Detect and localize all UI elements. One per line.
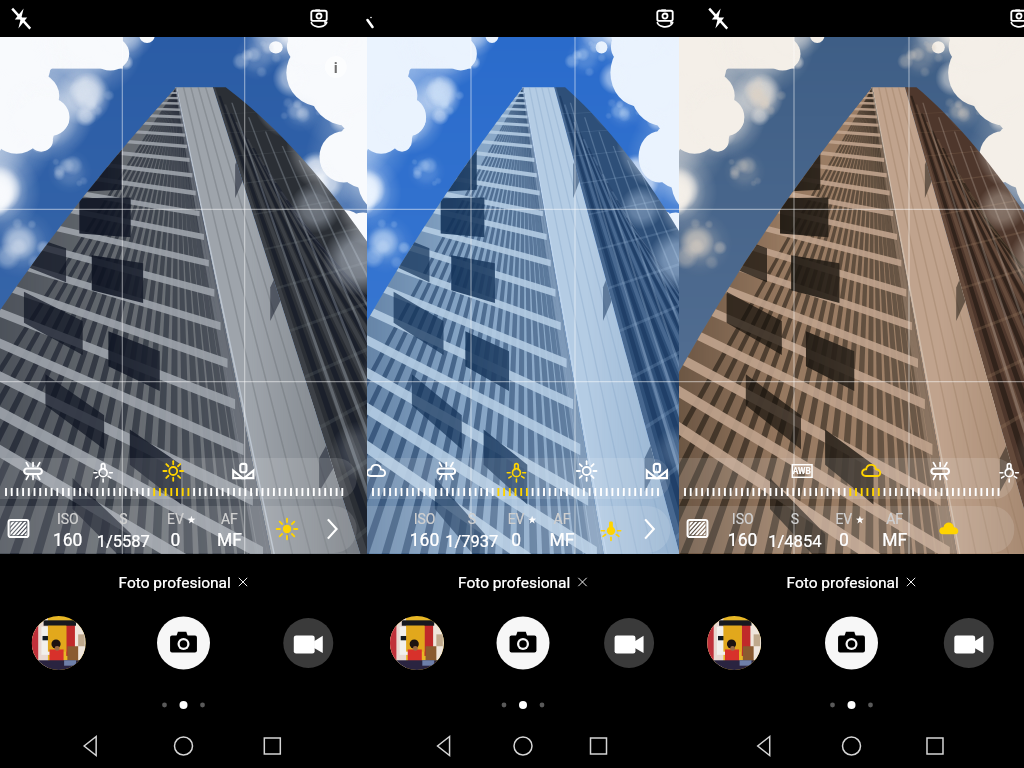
button[interactable]: Take photo	[154, 614, 212, 672]
button[interactable]: ISO 160	[716, 506, 768, 553]
button[interactable]: Flash off	[681, 5, 713, 33]
button[interactable]: White balance	[593, 510, 627, 548]
button[interactable]: Record video	[281, 616, 335, 670]
button[interactable]: Exposure value	[817, 506, 869, 553]
button[interactable]: Shooting info	[328, 48, 352, 72]
button[interactable]: Aspect ratio	[4, 510, 34, 548]
button[interactable]: Foto profesional	[457, 568, 589, 596]
button[interactable]: Daylight white balance	[158, 456, 188, 486]
button[interactable]: Camera settings	[3, 506, 364, 553]
button[interactable]: Incandescent white balance	[994, 456, 1024, 486]
button[interactable]: Gallery	[29, 614, 87, 672]
button[interactable]: Switch camera	[982, 5, 1016, 33]
button[interactable]: Fluorescent white balance	[431, 456, 461, 486]
button[interactable]: Recent apps	[912, 724, 956, 768]
button[interactable]: Auto white balance	[787, 456, 817, 486]
button[interactable]: Aspect ratio	[371, 510, 401, 548]
button[interactable]: Record video	[941, 616, 995, 670]
button[interactable]: Switch camera	[325, 5, 359, 33]
button[interactable]: More settings	[974, 510, 1008, 548]
button[interactable]: Focus mode	[203, 506, 255, 553]
button[interactable]: More settings	[632, 510, 666, 548]
button[interactable]: Take photo	[494, 614, 552, 672]
button[interactable]: Flash off	[369, 5, 401, 33]
button[interactable]: ISO 160	[41, 506, 93, 553]
button[interactable]: Foto profesional	[117, 568, 249, 596]
button[interactable]: Gallery	[387, 614, 445, 672]
button[interactable]: Focus mode	[536, 506, 588, 553]
button[interactable]: Exposure value	[149, 506, 201, 553]
button[interactable]: Flash off	[2, 5, 34, 33]
button[interactable]: Back	[422, 724, 466, 768]
button[interactable]: Recent apps	[576, 724, 620, 768]
button[interactable]: Fluorescent white balance	[18, 456, 48, 486]
button[interactable]: White balance	[931, 510, 965, 548]
button[interactable]: Record video	[602, 616, 656, 670]
button[interactable]: Foto profesional	[785, 568, 917, 596]
button[interactable]: Gallery	[705, 614, 763, 672]
button[interactable]: Incandescent white balance	[88, 456, 118, 486]
button[interactable]: Camera settings	[682, 506, 1021, 553]
button[interactable]: Home	[161, 724, 205, 768]
button[interactable]: Aspect ratio	[683, 510, 713, 548]
button[interactable]: Shutter speed	[446, 506, 498, 553]
button[interactable]: Back	[68, 724, 112, 768]
button[interactable]: Shade white balance	[641, 456, 671, 486]
button[interactable]: Home	[829, 724, 873, 768]
button[interactable]: Cloudy white balance	[361, 456, 391, 486]
button[interactable]: More settings	[315, 510, 349, 548]
button[interactable]: Exposure value	[490, 506, 542, 553]
button[interactable]: Shutter speed	[97, 506, 149, 553]
button[interactable]: White balance	[269, 510, 303, 548]
button[interactable]: Recent apps	[250, 724, 294, 768]
button[interactable]: Cloudy white balance	[856, 456, 886, 486]
button[interactable]: Home	[501, 724, 545, 768]
button[interactable]: Shutter speed	[769, 506, 821, 553]
button[interactable]: Camera settings	[370, 506, 676, 553]
button[interactable]: Fluorescent white balance	[925, 456, 955, 486]
button[interactable]: ISO 160	[398, 506, 450, 553]
button[interactable]: Incandescent white balance	[501, 456, 531, 486]
button[interactable]: Focus mode	[868, 506, 920, 553]
button[interactable]: Take photo	[822, 614, 880, 672]
button[interactable]: Switch camera	[637, 5, 671, 33]
button[interactable]: Shade white balance	[228, 456, 258, 486]
button[interactable]: Daylight white balance	[571, 456, 601, 486]
button[interactable]: Back	[742, 724, 786, 768]
